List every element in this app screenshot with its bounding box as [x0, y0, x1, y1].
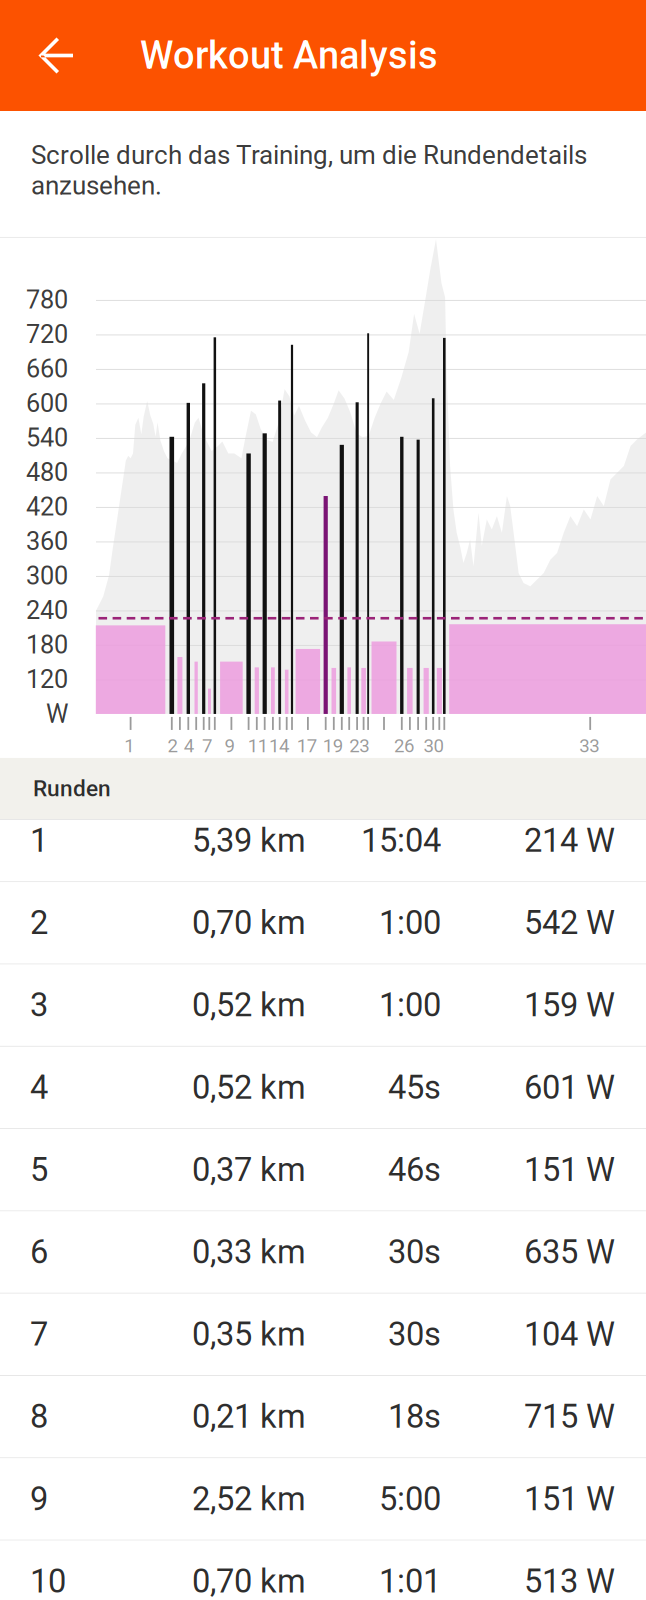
staticText: 46s	[388, 1151, 441, 1189]
staticText: 8	[30, 1397, 48, 1436]
staticText: 7	[202, 735, 212, 757]
button[interactable]: 7	[0, 1294, 646, 1376]
button[interactable]: 4	[0, 1047, 646, 1129]
staticText: 513 W	[524, 1562, 615, 1600]
staticText: 540	[26, 423, 68, 453]
staticText: 480	[26, 458, 68, 487]
staticText: 45s	[388, 1068, 441, 1107]
staticText: 5	[30, 1151, 48, 1189]
staticText: 360	[26, 527, 68, 556]
staticText: 26	[394, 735, 414, 757]
button[interactable]: 5	[0, 1129, 646, 1211]
staticText: 660	[26, 354, 68, 384]
staticText: 0,21 km	[192, 1397, 306, 1436]
staticText: W	[46, 699, 68, 729]
staticText: 14	[269, 735, 289, 757]
staticText: 5,39 km	[192, 821, 306, 860]
staticText: 15:04	[361, 821, 441, 860]
staticText: 0,35 km	[192, 1315, 306, 1353]
staticText: 214 W	[524, 821, 615, 860]
staticText: 635 W	[524, 1233, 615, 1271]
staticText: 30	[423, 735, 443, 757]
staticText: 19	[323, 735, 343, 757]
button[interactable]: 9	[0, 1458, 646, 1541]
staticText: 0,33 km	[192, 1233, 306, 1271]
staticText: 3	[30, 986, 48, 1024]
button[interactable]: 6	[0, 1211, 646, 1294]
staticText: 1	[30, 821, 48, 860]
staticText: 601 W	[524, 1068, 615, 1107]
staticText: 300	[26, 561, 68, 591]
staticText: 1:00	[379, 904, 441, 942]
button[interactable]: 2	[0, 882, 646, 964]
staticText: 159 W	[524, 986, 615, 1024]
staticText: 151 W	[524, 1480, 615, 1518]
button[interactable]: 1	[0, 800, 646, 882]
staticText: 5:00	[379, 1480, 441, 1518]
button[interactable]: 8	[0, 1376, 646, 1458]
staticText: 0,70 km	[192, 1562, 306, 1600]
staticText: 9	[225, 735, 235, 757]
staticText: 780	[26, 285, 68, 315]
staticText: 0,52 km	[192, 986, 306, 1024]
staticText: 30s	[388, 1233, 441, 1271]
button[interactable]: 3	[0, 964, 646, 1047]
staticText: 104 W	[524, 1315, 615, 1353]
staticText: 1:00	[379, 986, 441, 1024]
staticText: 542 W	[524, 904, 615, 942]
staticText: 4	[30, 1068, 48, 1107]
staticText: 10	[30, 1562, 66, 1600]
staticText: 180	[26, 630, 68, 660]
staticText: 0,52 km	[192, 1068, 306, 1107]
button[interactable]: Back	[0, 0, 93, 111]
staticText: 23	[349, 735, 369, 757]
staticText: 1:01	[379, 1562, 441, 1600]
staticText: 151 W	[524, 1151, 615, 1189]
staticText: Scrolle durch das Training, um die Runde…	[31, 140, 587, 201]
staticText: 120	[26, 665, 68, 694]
staticText: 420	[26, 492, 68, 522]
staticText: 30s	[388, 1315, 441, 1353]
staticText: 18s	[388, 1397, 441, 1436]
button[interactable]: 10	[0, 1541, 646, 1600]
staticText: 4	[184, 735, 194, 757]
staticText: 0,37 km	[192, 1151, 306, 1189]
staticText: Runden	[33, 775, 111, 802]
staticText: 0,70 km	[192, 904, 306, 942]
staticText: 600	[26, 389, 68, 418]
staticText: 2	[167, 735, 177, 757]
staticText: 2	[30, 904, 48, 942]
staticText: 720	[26, 320, 68, 349]
staticText: 1	[124, 735, 134, 757]
staticText: 715 W	[524, 1397, 615, 1436]
staticText: 2,52 km	[192, 1480, 306, 1518]
staticText: 33	[579, 735, 599, 757]
staticText: Workout Analysis	[140, 33, 438, 78]
staticText: 240	[26, 596, 68, 625]
staticText: 11	[248, 735, 268, 757]
staticText: 17	[297, 735, 317, 757]
staticText: 7	[30, 1315, 48, 1353]
staticText: 6	[30, 1233, 48, 1271]
staticText: 9	[30, 1480, 48, 1518]
